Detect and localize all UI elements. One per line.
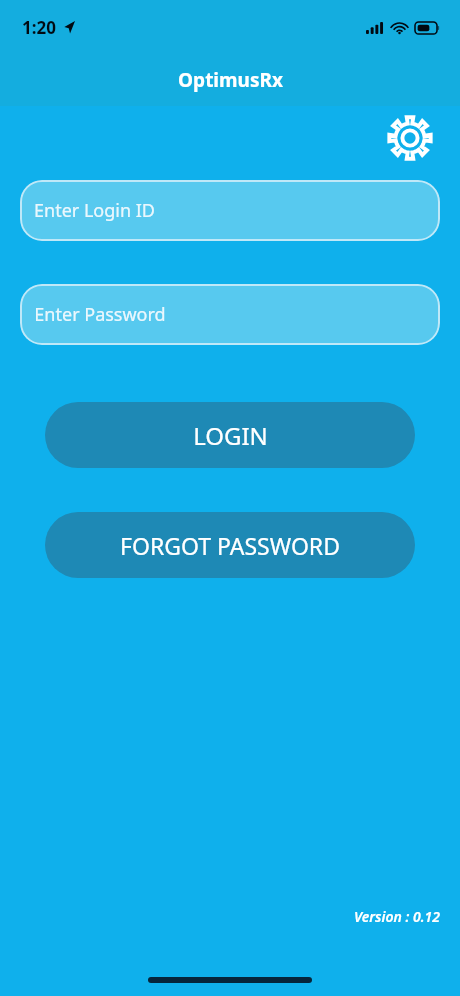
button[interactable]: LOGIN <box>45 402 415 468</box>
button[interactable]: Enter Password <box>20 284 440 345</box>
staticText: Version : 0.12 <box>354 907 440 926</box>
staticText: Enter Password <box>34 302 166 327</box>
staticText: Enter Login ID <box>34 198 155 223</box>
staticText: FORGOT PASSWORD <box>120 530 340 561</box>
staticText: LOGIN <box>193 419 268 452</box>
staticText: 1:20 <box>22 16 56 39</box>
button[interactable]: Enter Login ID <box>20 180 440 241</box>
button[interactable]: Settings <box>386 114 434 162</box>
button[interactable]: FORGOT PASSWORD <box>45 512 415 578</box>
staticText: OptimusRx <box>178 67 283 93</box>
